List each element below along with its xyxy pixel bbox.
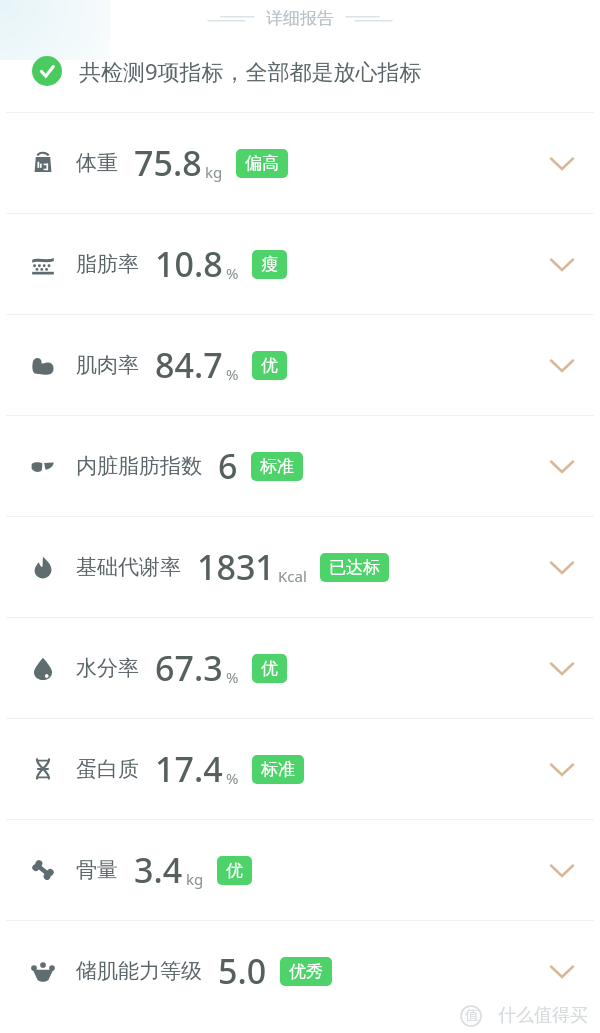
- staticText: 5.0: [218, 948, 267, 994]
- staticText: 3.4: [134, 847, 183, 893]
- staticText: 标准: [260, 456, 294, 477]
- button[interactable]: 展开 储肌能力等级: [542, 951, 582, 991]
- staticText: 蛋白质: [76, 756, 139, 782]
- button[interactable]: 储肌能力等级: [0, 921, 600, 1021]
- button[interactable]: 优: [217, 856, 252, 885]
- staticText: %: [226, 667, 239, 687]
- staticText: %: [226, 263, 239, 283]
- staticText: Kcal: [278, 566, 307, 586]
- button[interactable]: 展开 基础代谢率: [542, 547, 582, 587]
- button[interactable]: 展开 骨量: [542, 850, 582, 890]
- button[interactable]: 展开 水分率: [542, 648, 582, 688]
- staticText: 标准: [261, 759, 295, 780]
- staticText: 基础代谢率: [76, 554, 181, 580]
- button[interactable]: 标准: [252, 755, 304, 784]
- button[interactable]: 蛋白质: [0, 719, 600, 819]
- staticText: 84.7: [155, 342, 223, 388]
- button[interactable]: 展开 蛋白质: [542, 749, 582, 789]
- button[interactable]: 瘦: [252, 250, 287, 279]
- button[interactable]: 展开 肌肉率: [542, 345, 582, 385]
- button[interactable]: 偏高: [236, 149, 288, 178]
- staticText: kg: [205, 162, 223, 182]
- staticText: 已达标: [329, 557, 380, 578]
- staticText: 内脏脂肪指数: [76, 453, 202, 479]
- staticText: 67.3: [155, 645, 223, 691]
- staticText: 10.8: [155, 241, 223, 287]
- staticText: kg: [186, 869, 204, 889]
- staticText: 水分率: [76, 655, 139, 681]
- button[interactable]: 体重: [0, 113, 600, 213]
- button[interactable]: 脂肪率: [0, 214, 600, 314]
- staticText: 1831: [197, 544, 275, 590]
- staticText: 优: [226, 860, 243, 881]
- button[interactable]: 肌肉率: [0, 315, 600, 415]
- staticText: 共检测9项指标，全部都是放心指标: [79, 56, 422, 86]
- staticText: 优: [261, 658, 278, 679]
- button[interactable]: 内脏脂肪指数: [0, 416, 600, 516]
- staticText: 详细报告: [266, 8, 334, 29]
- staticText: 17.4: [155, 746, 223, 792]
- button[interactable]: 水分率: [0, 618, 600, 718]
- staticText: 优: [261, 355, 278, 376]
- staticText: 75.8: [134, 140, 202, 186]
- button[interactable]: 共检测9项指标，全部都是放心指标: [0, 56, 600, 86]
- button[interactable]: 优: [252, 351, 287, 380]
- button[interactable]: 骨量: [0, 820, 600, 920]
- staticText: 储肌能力等级: [76, 958, 202, 984]
- button[interactable]: 展开 脂肪率: [542, 244, 582, 284]
- button[interactable]: 已达标: [320, 553, 389, 582]
- staticText: 体重: [76, 150, 118, 176]
- button[interactable]: 展开 体重: [542, 143, 582, 183]
- button[interactable]: 优秀: [280, 957, 332, 986]
- staticText: 优秀: [289, 961, 323, 982]
- button[interactable]: 基础代谢率: [0, 517, 600, 617]
- staticText: 6: [218, 443, 238, 489]
- staticText: 脂肪率: [76, 251, 139, 277]
- staticText: 骨量: [76, 857, 118, 883]
- button[interactable]: 展开 内脏脂肪指数: [542, 446, 582, 486]
- staticText: %: [226, 768, 239, 788]
- button[interactable]: 优: [252, 654, 287, 683]
- staticText: 什么值得买: [498, 1004, 588, 1027]
- staticText: 瘦: [261, 254, 278, 275]
- staticText: 肌肉率: [76, 352, 139, 378]
- staticText: %: [226, 364, 239, 384]
- staticText: 值: [465, 1007, 479, 1025]
- button[interactable]: 标准: [251, 452, 303, 481]
- staticText: 偏高: [245, 153, 279, 174]
